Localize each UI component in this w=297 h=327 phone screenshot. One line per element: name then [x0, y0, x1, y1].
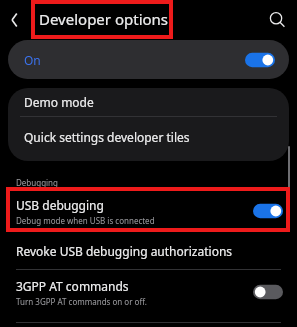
staticText: Demo mode: [24, 94, 94, 110]
staticText: Turn 3GPP AT commands on or off.: [16, 296, 147, 307]
staticText: Revoke USB debugging authorizations: [16, 243, 233, 259]
staticText: On: [24, 52, 41, 68]
staticText: USB debugging: [16, 197, 104, 213]
staticText: Debug mode when USB is connected: [16, 215, 155, 226]
button[interactable]: Search: [265, 8, 289, 32]
button[interactable]: USB debugging: [0, 190, 297, 232]
button[interactable]: 3GPP AT commands: [0, 270, 297, 314]
button[interactable]: Revoke USB debugging authorizations: [0, 232, 297, 269]
staticText: Quick settings developer tiles: [24, 129, 190, 145]
button[interactable]: Demo mode: [8, 88, 289, 116]
staticText: Debugging: [16, 177, 58, 188]
button[interactable]: Back: [0, 5, 30, 35]
button[interactable]: On: [8, 40, 289, 79]
button[interactable]: Quick settings developer tiles: [8, 117, 289, 161]
staticText: 3GPP AT commands: [16, 278, 129, 294]
staticText: Developer options: [39, 9, 169, 29]
